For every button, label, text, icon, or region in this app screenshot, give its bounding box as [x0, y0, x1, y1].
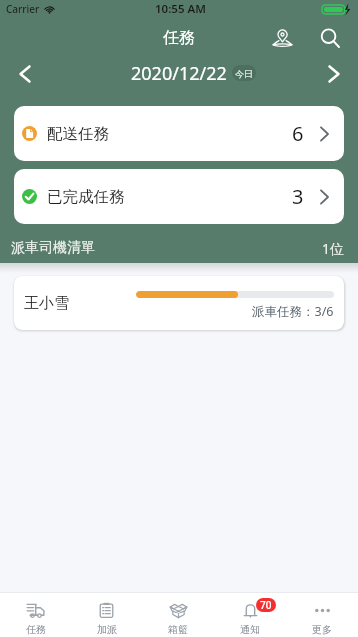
staticText: 配送任務: [47, 124, 109, 144]
staticText: Carrier: [6, 2, 40, 16]
button[interactable]: 更多: [286, 593, 358, 637]
staticText: 王小雪: [24, 294, 69, 313]
button[interactable]: 箱籃: [142, 593, 214, 637]
staticText: 今日: [235, 68, 253, 79]
button[interactable]: Search: [314, 22, 346, 54]
button[interactable]: 王小雪: [14, 276, 344, 330]
button[interactable]: 配送任務: [14, 106, 344, 161]
button[interactable]: Next day: [317, 57, 350, 90]
button[interactable]: Map: [266, 22, 298, 54]
staticText: 派車司機清單: [11, 239, 95, 257]
button[interactable]: 已完成任務: [14, 169, 344, 224]
staticText: 70: [260, 598, 272, 612]
staticText: 任務: [163, 28, 195, 48]
staticText: 派車任務：3/6: [252, 303, 334, 320]
staticText: 1位: [322, 239, 345, 258]
staticText: 更多: [312, 623, 332, 636]
button[interactable]: 加派: [71, 593, 142, 637]
staticText: 3: [292, 183, 304, 210]
staticText: 箱籃: [168, 623, 188, 636]
button[interactable]: 70: [214, 593, 286, 637]
staticText: 10:55 AM: [155, 1, 206, 17]
staticText: 6: [292, 120, 304, 147]
button[interactable]: 今日: [232, 65, 256, 81]
button[interactable]: 任務: [0, 593, 71, 637]
staticText: 加派: [97, 623, 117, 636]
staticText: 2020/12/22: [131, 61, 227, 86]
staticText: 任務: [26, 623, 46, 636]
button[interactable]: Previous day: [8, 57, 41, 90]
staticText: 通知: [240, 623, 260, 636]
staticText: 已完成任務: [47, 187, 125, 207]
